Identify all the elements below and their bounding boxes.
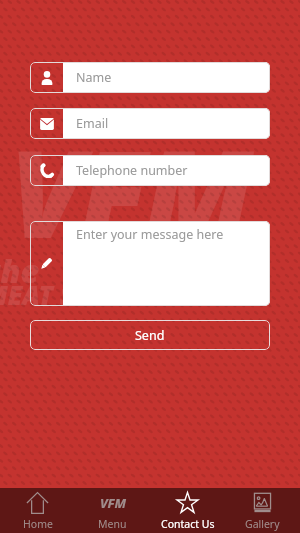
staticText: Send — [135, 327, 165, 344]
staticText: Contact Us — [161, 517, 215, 531]
staticText: Telephone number — [76, 162, 188, 179]
staticText: MEAT SUPERSTORE — [0, 277, 219, 312]
button[interactable]: Home — [0, 488, 75, 533]
button[interactable]: Gallery — [225, 488, 300, 533]
button[interactable]: Send — [30, 320, 270, 350]
staticText: Gallery — [245, 517, 280, 531]
staticText: Name — [76, 69, 112, 86]
button[interactable]: VFM — [75, 488, 150, 533]
staticText: Home — [23, 517, 53, 531]
staticText: Enter your message here — [76, 226, 224, 243]
staticText: the — [0, 249, 40, 293]
button[interactable]: Telephone number — [30, 155, 270, 186]
staticText: VFM — [10, 110, 250, 273]
staticText: VFM — [100, 494, 126, 512]
staticText: Menu — [98, 517, 127, 531]
button[interactable]: Enter your message here — [30, 221, 270, 306]
staticText: Email — [76, 115, 109, 132]
button[interactable]: Name — [30, 62, 270, 93]
button[interactable]: Email — [30, 108, 270, 139]
button[interactable]: Contact Us — [150, 488, 225, 533]
